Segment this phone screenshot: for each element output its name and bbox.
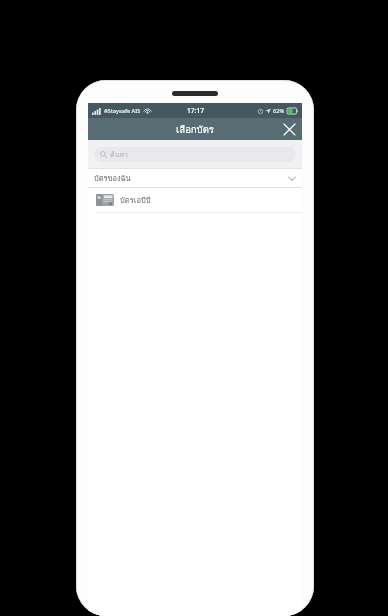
staticText: 62%: [273, 107, 285, 115]
button[interactable]: ค้นหา: [94, 147, 296, 162]
staticText: บัตรเอบีบี: [120, 194, 151, 206]
button[interactable]: Close: [279, 119, 299, 139]
staticText: ค้นหา: [110, 149, 129, 160]
staticText: เลือกบัตร: [176, 122, 214, 137]
staticText: 17:17: [187, 106, 204, 115]
button[interactable]: บัตรเอบีบี: [88, 188, 302, 212]
button[interactable]: บัตรของฉัน: [88, 169, 302, 187]
staticText: บัตรของฉัน: [94, 172, 131, 184]
staticText: #Staysafe AIS: [104, 107, 141, 115]
